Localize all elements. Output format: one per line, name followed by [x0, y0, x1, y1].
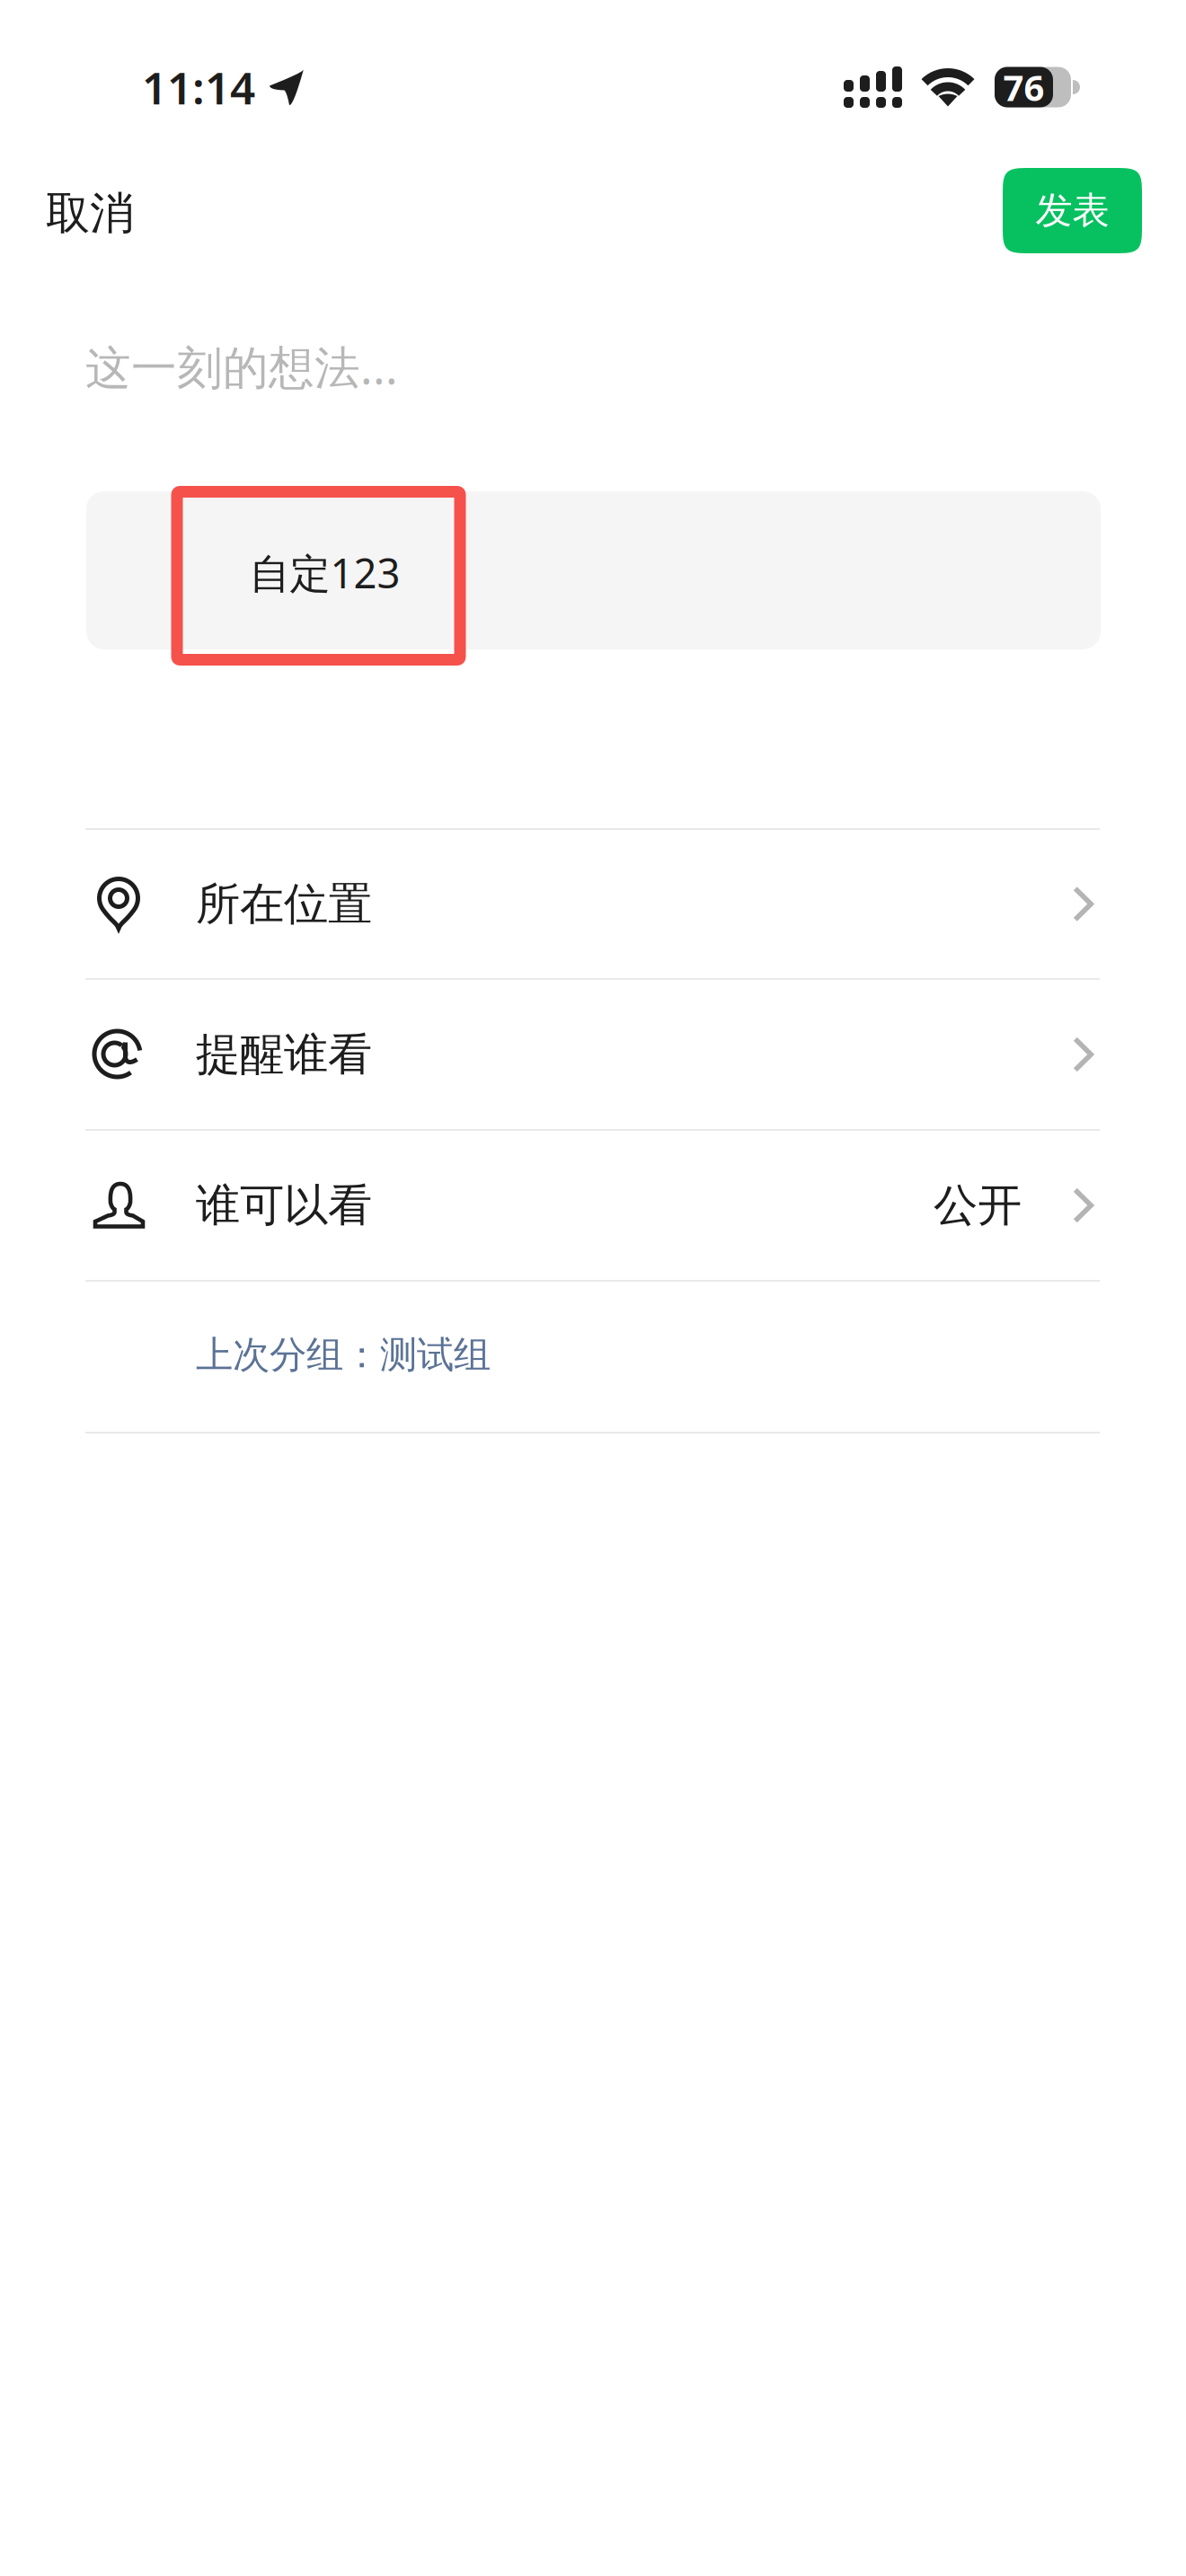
staticText: 所在位置 [196, 877, 372, 931]
staticText: 提醒谁看 [196, 1027, 372, 1082]
button[interactable]: 发表 [1003, 168, 1142, 253]
staticText: 自定123 [249, 546, 400, 600]
button[interactable]: 上次分组：测试组 [85, 1282, 1100, 1432]
staticText: 11:14 [142, 58, 255, 116]
staticText: 上次分组：测试组 [196, 1332, 491, 1378]
staticText: 取消 [46, 186, 134, 241]
staticText: 这一刻的想法... [85, 336, 398, 397]
button[interactable]: 提醒谁看 [85, 980, 1100, 1129]
button[interactable]: 所在位置 [85, 830, 1100, 978]
staticText: 发表 [1036, 188, 1109, 233]
button[interactable]: 取消 [0, 149, 172, 272]
staticText: 公开 [934, 1178, 1022, 1233]
staticText: 谁可以看 [196, 1178, 372, 1233]
button[interactable]: 谁可以看 [85, 1131, 1100, 1280]
staticText: 76 [1003, 63, 1044, 111]
